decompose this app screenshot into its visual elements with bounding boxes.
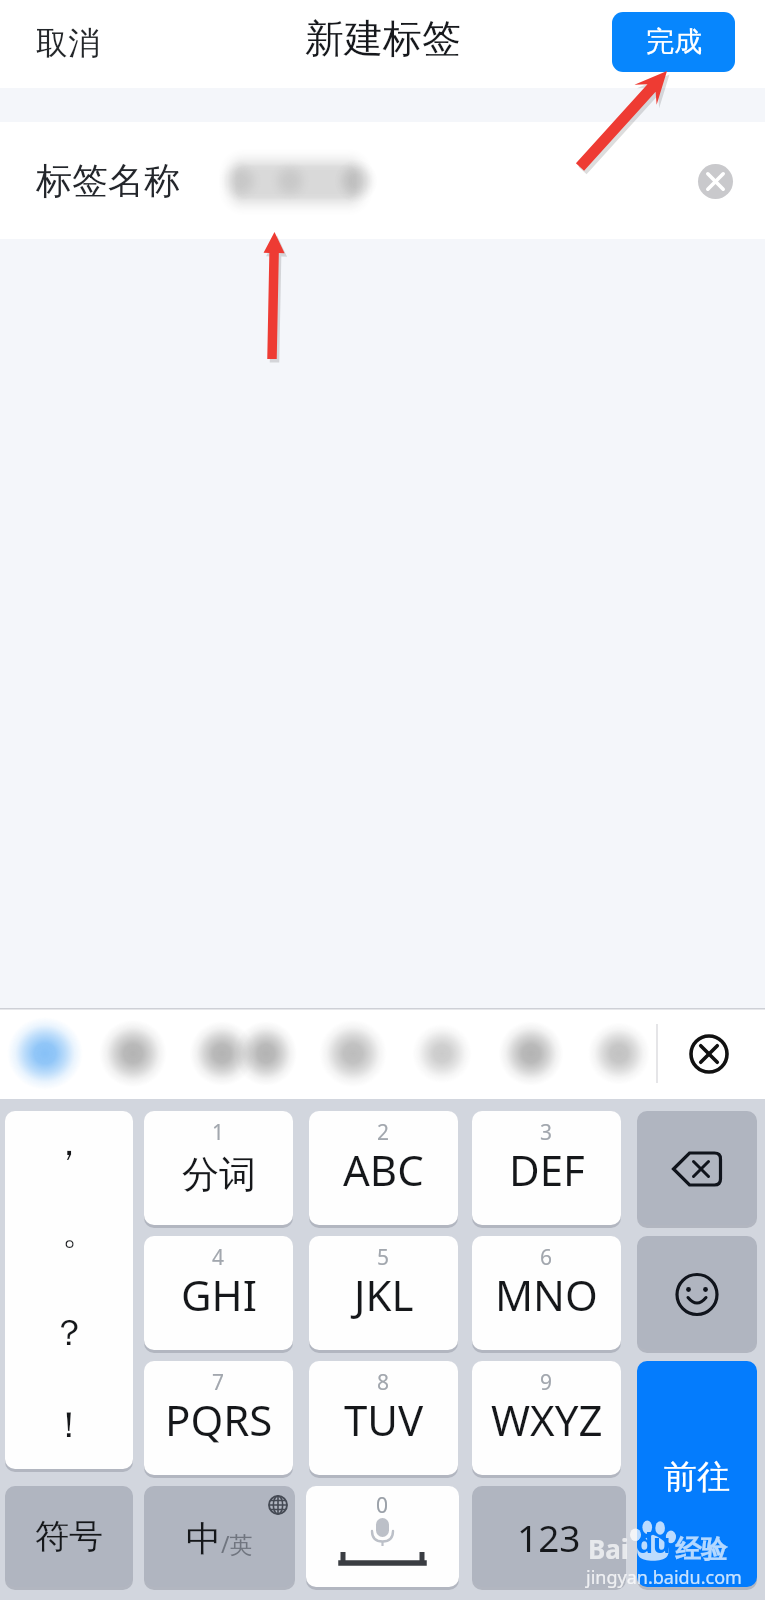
staticText: DEF (509, 1141, 585, 1198)
staticText: ！ (51, 1402, 87, 1447)
staticText: 分词 (182, 1151, 256, 1198)
staticText: 经验 (675, 1533, 727, 1566)
staticText: 6 (540, 1243, 553, 1272)
staticText: JKL (354, 1266, 414, 1323)
staticText: 。 (62, 1209, 98, 1254)
button[interactable]: 123 (472, 1486, 626, 1587)
staticText: du (636, 1524, 671, 1561)
button[interactable]: 删除 (637, 1111, 757, 1225)
staticText: /英 (221, 1528, 253, 1559)
button[interactable]: 2 (309, 1111, 458, 1225)
staticText: 中 (186, 1517, 221, 1561)
button[interactable]: 5 (309, 1236, 458, 1350)
staticText: ABC (343, 1141, 424, 1198)
button[interactable]: 6 (472, 1236, 621, 1350)
button[interactable]: 前往 (637, 1361, 757, 1587)
button[interactable]: 完成 (612, 12, 735, 72)
staticText: 符号 (35, 1515, 103, 1558)
staticText: 5 (377, 1243, 390, 1272)
staticText: 2 (377, 1118, 390, 1147)
staticText: 标签名称 (36, 158, 180, 203)
staticText: 4 (212, 1243, 225, 1272)
button[interactable]: 收起候选 (679, 1024, 739, 1084)
button[interactable]: 1 (144, 1111, 293, 1225)
button[interactable]: 9 (472, 1361, 621, 1475)
button[interactable]: 8 (309, 1361, 458, 1475)
staticText: ？ (51, 1310, 87, 1355)
button[interactable]: 中 (144, 1486, 295, 1587)
button[interactable]: 清除 (693, 159, 737, 203)
staticText: 完成 (646, 24, 702, 59)
staticText: jingyan.baidu.com (586, 1565, 742, 1590)
staticText: ， (51, 1120, 87, 1165)
staticText: GHI (181, 1266, 257, 1323)
staticText: PQRS (165, 1391, 273, 1448)
staticText: WXYZ (491, 1391, 603, 1448)
button[interactable]: 3 (472, 1111, 621, 1225)
staticText: Bai (588, 1531, 629, 1566)
staticText: 前往 (664, 1456, 730, 1498)
staticText: 7 (212, 1368, 225, 1397)
staticText: 9 (540, 1368, 553, 1397)
button[interactable]: 4 (144, 1236, 293, 1350)
staticText: 取消 (36, 23, 100, 63)
staticText: 123 (517, 1512, 581, 1562)
staticText: 1 (212, 1118, 225, 1147)
button[interactable]: 7 (144, 1361, 293, 1475)
button[interactable]: 语音输入 (306, 1486, 459, 1587)
button[interactable]: 表情 (637, 1236, 757, 1350)
button[interactable]: ， (5, 1111, 133, 1469)
staticText: 0 (376, 1491, 389, 1520)
staticText: 新建标签 (305, 14, 461, 63)
staticText: TUV (344, 1391, 424, 1448)
button[interactable]: 取消 (36, 23, 100, 63)
staticText: MNO (495, 1266, 598, 1323)
button[interactable]: 符号 (5, 1486, 133, 1587)
staticText: 8 (377, 1368, 390, 1397)
staticText: 3 (540, 1118, 553, 1147)
